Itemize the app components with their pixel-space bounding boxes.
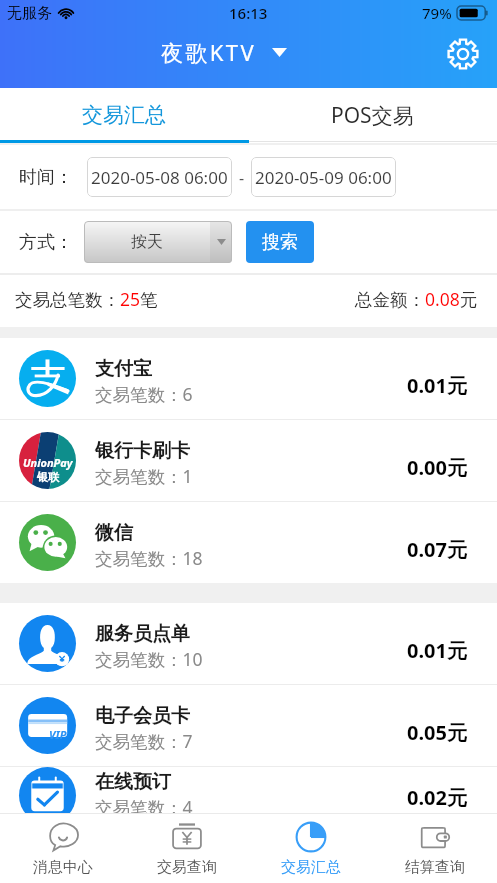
staticText: 交易笔数：7 (95, 729, 193, 753)
staticText: 交易汇总 (281, 858, 341, 877)
button[interactable]: 结算查询 (373, 814, 497, 883)
staticText: 电子会员卡 (95, 704, 190, 728)
staticText: 交易笔数：6 (95, 382, 193, 406)
staticText: 无服务 (7, 4, 52, 23)
staticText: 消息中心 (33, 858, 93, 877)
staticText: 银联 (37, 470, 59, 484)
staticText: 交易笔数：4 (95, 795, 193, 816)
button[interactable]: 消息中心 (0, 814, 125, 883)
staticText: 交易查询 (157, 858, 217, 877)
staticText: 0.01元 (407, 372, 467, 399)
staticText: 总金额：0.08元 (355, 287, 478, 311)
staticText: 支付宝 (95, 357, 152, 381)
staticText: 结算查询 (405, 858, 465, 877)
staticText: 2020-05-08 06:00 (91, 166, 228, 189)
staticText: POS交易 (331, 101, 414, 130)
button[interactable]: 在线预订 (0, 767, 497, 813)
staticText: UnionPay (23, 455, 73, 470)
staticText: 16:13 (229, 3, 268, 23)
staticText: 0.05元 (407, 719, 467, 746)
button[interactable]: POS交易 (248, 88, 497, 140)
staticText: 时间： (19, 166, 73, 189)
button[interactable]: 按天 (84, 221, 232, 263)
staticText: 方式： (19, 231, 73, 254)
staticText: 2020-05-09 06:00 (255, 166, 392, 189)
staticText: 0.00元 (407, 454, 467, 481)
staticText: 服务员点单 (95, 622, 190, 646)
staticText: 0.07元 (407, 536, 467, 563)
button[interactable]: 交易汇总 (0, 88, 248, 140)
staticText: 搜索 (262, 231, 298, 254)
staticText: 0.01元 (407, 637, 467, 664)
button[interactable]: 2020-05-08 06:00 (87, 157, 232, 197)
staticText: 交易总笔数：25笔 (15, 287, 158, 311)
staticText: 0.02元 (407, 784, 467, 811)
button[interactable]: 交易查询 (125, 814, 249, 883)
button[interactable]: 夜歌KTV (161, 37, 287, 67)
staticText: 交易笔数：10 (95, 647, 203, 671)
staticText: VIP (49, 727, 67, 742)
button[interactable]: 服务员点单 (0, 603, 497, 684)
button[interactable]: 微信 (0, 502, 497, 583)
button[interactable]: UnionPay (0, 420, 497, 501)
button[interactable]: 搜索 (246, 221, 314, 263)
staticText: 夜歌KTV (161, 37, 257, 67)
button[interactable]: 交易汇总 (249, 814, 373, 883)
button[interactable]: 支付宝 (0, 338, 497, 419)
button[interactable]: 2020-05-09 06:00 (251, 157, 396, 197)
staticText: 按天 (131, 232, 163, 252)
button[interactable]: VIP (0, 685, 497, 766)
staticText: 79% (422, 3, 452, 23)
staticText: 银行卡刷卡 (95, 439, 190, 463)
staticText: 微信 (95, 521, 133, 545)
button[interactable]: Settings (440, 31, 486, 77)
staticText: - (239, 167, 245, 187)
staticText: 在线预订 (95, 770, 171, 794)
staticText: 交易笔数：1 (95, 464, 193, 488)
staticText: 交易笔数：18 (95, 546, 203, 570)
staticText: 交易汇总 (82, 102, 166, 128)
